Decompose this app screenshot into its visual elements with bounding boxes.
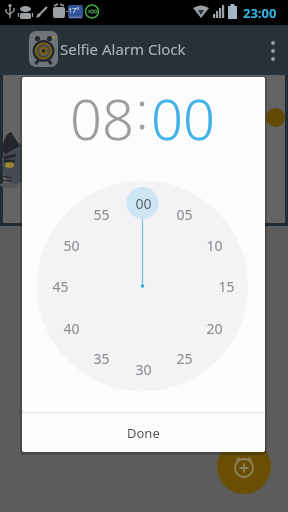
staticText: 08 [70, 80, 134, 142]
button[interactable]: Done [22, 413, 265, 452]
staticText: 45 [52, 277, 69, 295]
staticText: 23:00 [243, 4, 277, 22]
button[interactable] [262, 33, 284, 69]
staticText: 05 [176, 205, 193, 223]
staticText: 35 [93, 349, 110, 367]
staticText: 00 [151, 80, 215, 142]
staticText: 55 [93, 205, 110, 223]
staticText: 25 [176, 349, 193, 367]
button[interactable] [217, 440, 271, 494]
staticText: -17° [66, 6, 80, 16]
button[interactable] [266, 108, 285, 127]
staticText: 30 [135, 360, 152, 378]
staticText: Done [127, 424, 160, 442]
staticText: 20 [206, 319, 223, 337]
staticText: 00 [135, 194, 152, 212]
staticText: : [136, 77, 149, 138]
staticText: 40 [63, 319, 80, 337]
staticText: 10 [206, 236, 223, 254]
staticText: 15 [218, 277, 235, 295]
staticText: Selfie Alarm Clock [60, 39, 186, 59]
staticText: 50 [63, 236, 80, 254]
